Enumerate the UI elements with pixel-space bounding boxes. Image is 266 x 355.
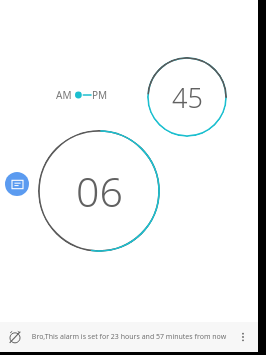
staticText: AM [56,88,72,102]
button[interactable]: Alarm off [0,322,30,352]
staticText: 06 [76,163,123,219]
button[interactable]: AM [56,86,108,104]
staticText: Bro,This alarm is set for 23 hours and 5… [30,332,228,342]
button[interactable]: More options [228,322,258,352]
button[interactable]: 45 [147,57,227,137]
staticText: PM [92,88,108,102]
button[interactable]: 06 [38,130,160,252]
button[interactable]: Switch to keyboard input [5,172,29,196]
staticText: 45 [172,79,203,116]
